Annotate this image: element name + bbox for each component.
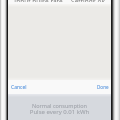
- button[interactable]: Cancel: [8, 81, 30, 94]
- staticText: Input pulse rate Settings ok: [14, 0, 105, 2]
- other: Device bezel: [0, 0, 8, 120]
- button[interactable]: Input pulse rate Settings ok: [8, 0, 111, 5]
- staticText: Normal consumption: [8, 102, 111, 109]
- button[interactable]: Done: [94, 81, 111, 93]
- staticText: Done: [97, 84, 109, 90]
- staticText: Pulse every 0.01 kWh: [8, 108, 111, 116]
- staticText: Cancel: [11, 84, 27, 91]
